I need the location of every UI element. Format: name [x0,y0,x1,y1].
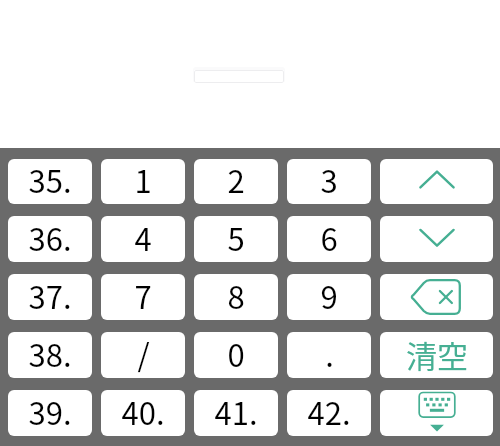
staticText: 35. [28,159,72,202]
button[interactable] [193,67,285,83]
button[interactable]: 8 [194,274,278,320]
button[interactable]: 清空 [380,332,493,378]
button[interactable]: 36. [8,216,92,262]
staticText: 41. [214,390,258,434]
button[interactable]: 0 [194,332,278,378]
staticText: 1 [134,159,152,202]
button[interactable]: 1 [101,159,185,204]
button[interactable]: . [287,332,371,378]
button[interactable]: 9 [287,274,371,320]
button[interactable]: / [101,332,185,378]
staticText: 37. [28,274,72,318]
staticText: 0 [227,332,245,376]
staticText: 4 [134,216,152,260]
button[interactable]: 42. [287,390,371,436]
button[interactable]: 7 [101,274,185,320]
button[interactable]: 41. [194,390,278,436]
button[interactable]: Hide keyboard [380,390,493,436]
staticText: 36. [28,216,72,260]
staticText: . [325,332,334,376]
button[interactable]: 2 [194,159,278,204]
button[interactable]: Backspace [380,274,493,320]
button[interactable]: 38. [8,332,92,378]
button[interactable]: 3 [287,159,371,204]
button[interactable]: 39. [8,390,92,436]
button[interactable]: 6 [287,216,371,262]
staticText: 42. [307,390,351,434]
staticText: 8 [227,274,245,318]
staticText: 38. [28,332,72,376]
button[interactable]: 5 [194,216,278,262]
button[interactable]: 4 [101,216,185,262]
staticText: 3 [320,159,338,202]
button[interactable]: Next [380,216,493,262]
staticText: 2 [227,159,245,202]
staticText: 40. [121,390,165,434]
button[interactable]: Previous [380,159,493,204]
button[interactable]: 35. [8,159,92,204]
staticText: / [137,332,150,376]
staticText: 9 [320,274,338,318]
button[interactable]: 40. [101,390,185,436]
staticText: 39. [28,390,72,434]
staticText: 6 [320,216,338,260]
staticText: 7 [134,274,152,318]
button[interactable]: 37. [8,274,92,320]
staticText: 清空 [406,332,468,377]
staticText: 5 [227,216,245,260]
